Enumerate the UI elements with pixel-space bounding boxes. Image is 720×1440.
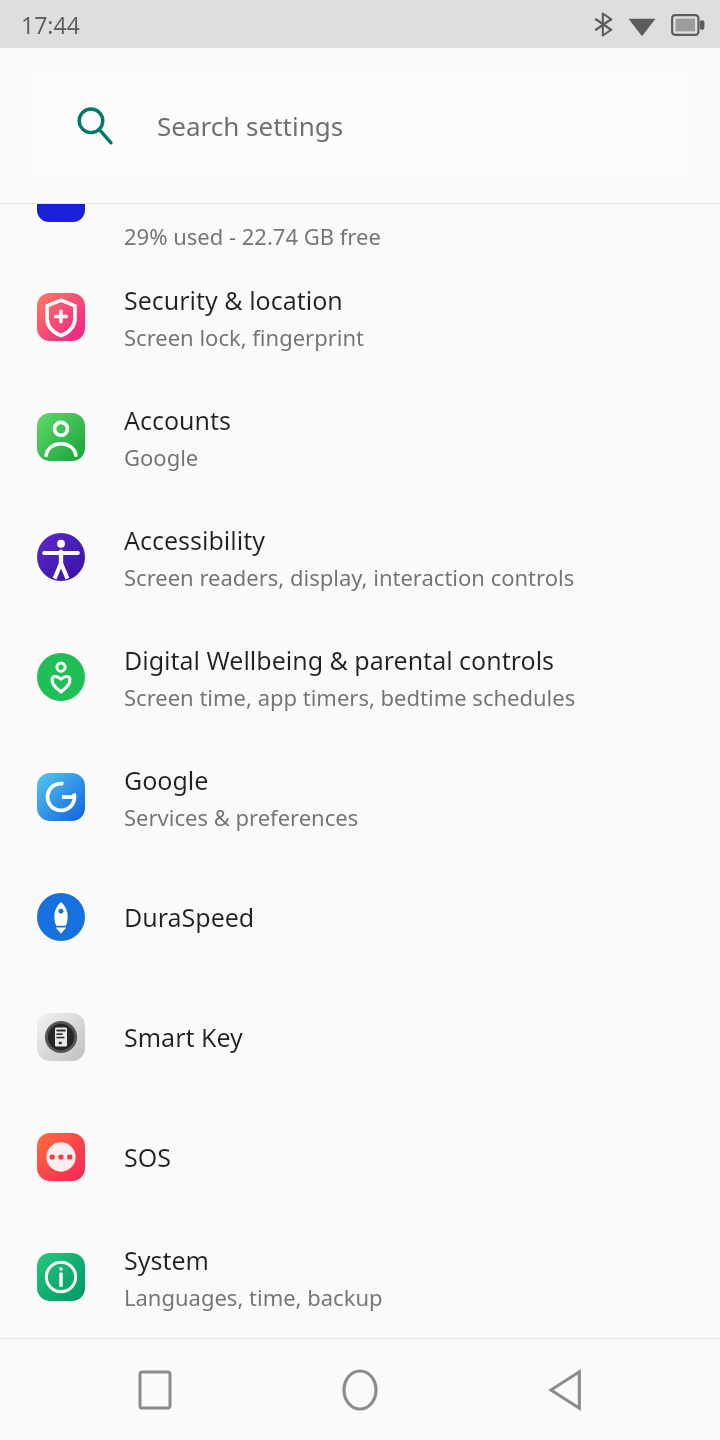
button[interactable]: Smart Key (0, 977, 720, 1097)
button[interactable]: 29% used - 22.74 GB free (0, 204, 720, 257)
staticText: DuraSpeed (124, 900, 255, 934)
button[interactable]: Accessibility (0, 497, 720, 617)
staticText: SOS (124, 1140, 171, 1174)
staticText: 17:44 (21, 9, 80, 40)
staticText: Smart Key (124, 1020, 243, 1054)
staticText: System (124, 1243, 209, 1277)
staticText: Digital Wellbeing & parental controls (124, 643, 555, 677)
button[interactable]: Home (310, 1340, 410, 1440)
button[interactable]: Google (0, 737, 720, 857)
button[interactable]: System (0, 1217, 720, 1337)
button[interactable]: Digital Wellbeing & parental controls (0, 617, 720, 737)
staticText: Accounts (124, 403, 232, 437)
button[interactable]: Search (31, 78, 689, 173)
button[interactable]: SOS (0, 1097, 720, 1217)
staticText: Google (124, 442, 199, 472)
staticText: Languages, time, backup (124, 1282, 383, 1312)
button[interactable]: DuraSpeed (0, 857, 720, 977)
staticText: Services & preferences (124, 802, 359, 832)
staticText: 29% used - 22.74 GB free (124, 221, 381, 251)
staticText: Accessibility (124, 523, 265, 557)
button[interactable]: Accounts (0, 377, 720, 497)
button[interactable]: Back (515, 1340, 615, 1440)
staticText: Google (124, 763, 209, 797)
button[interactable]: Recent apps (105, 1340, 205, 1440)
staticText: Screen readers, display, interaction con… (124, 562, 575, 592)
staticText: Search settings (157, 108, 344, 143)
staticText: Security & location (124, 283, 343, 317)
other: Search (75, 106, 115, 146)
staticText: Screen time, app timers, bedtime schedul… (124, 682, 576, 712)
button[interactable]: Security & location (0, 257, 720, 377)
staticText: Screen lock, fingerprint (124, 322, 365, 352)
